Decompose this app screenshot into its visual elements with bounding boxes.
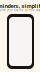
staticText: Reminders, simplified xyxy=(0,2,40,10)
staticText: plan your day the gentle way xyxy=(0,8,40,12)
